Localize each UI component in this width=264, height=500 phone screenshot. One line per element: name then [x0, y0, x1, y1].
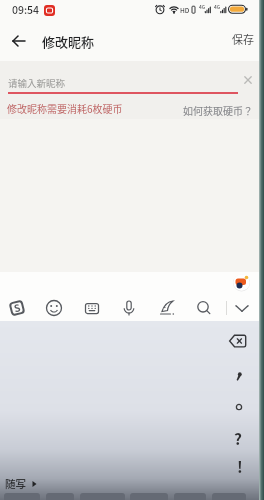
- staticText: 修改昵称需要消耗6枚硬币: [7, 101, 123, 115]
- staticText: 4G: [199, 3, 206, 10]
- button[interactable]: ?: [228, 427, 250, 453]
- button[interactable]: [79, 296, 105, 322]
- button[interactable]: [191, 296, 217, 322]
- button[interactable]: [228, 366, 250, 386]
- staticText: 保存: [232, 31, 254, 47]
- staticText: !: [237, 455, 243, 477]
- button[interactable]: [233, 274, 250, 291]
- staticText: HD: [180, 5, 190, 14]
- button[interactable]: S: [4, 296, 30, 322]
- staticText: 4G: [214, 3, 221, 10]
- staticText: 修改昵称: [42, 32, 95, 51]
- staticText: 随写: [5, 476, 26, 491]
- button[interactable]: [6, 30, 30, 52]
- button[interactable]: [228, 333, 248, 349]
- button[interactable]: [228, 396, 250, 418]
- staticText: S: [12, 299, 22, 315]
- button[interactable]: 保存: [228, 30, 260, 50]
- button[interactable]: !: [228, 455, 250, 481]
- button[interactable]: 随写: [2, 474, 42, 492]
- button[interactable]: [8, 62, 238, 92]
- button[interactable]: [116, 296, 142, 322]
- staticText: 请输入新昵称: [8, 76, 66, 90]
- button[interactable]: [41, 296, 67, 322]
- button[interactable]: 如何获取硬币？: [183, 101, 253, 115]
- staticText: 09:54: [12, 2, 40, 17]
- button[interactable]: [154, 296, 180, 322]
- button[interactable]: [240, 72, 256, 88]
- staticText: 如何获取硬币？: [183, 103, 253, 117]
- staticText: ?: [234, 427, 242, 449]
- button[interactable]: [229, 296, 255, 322]
